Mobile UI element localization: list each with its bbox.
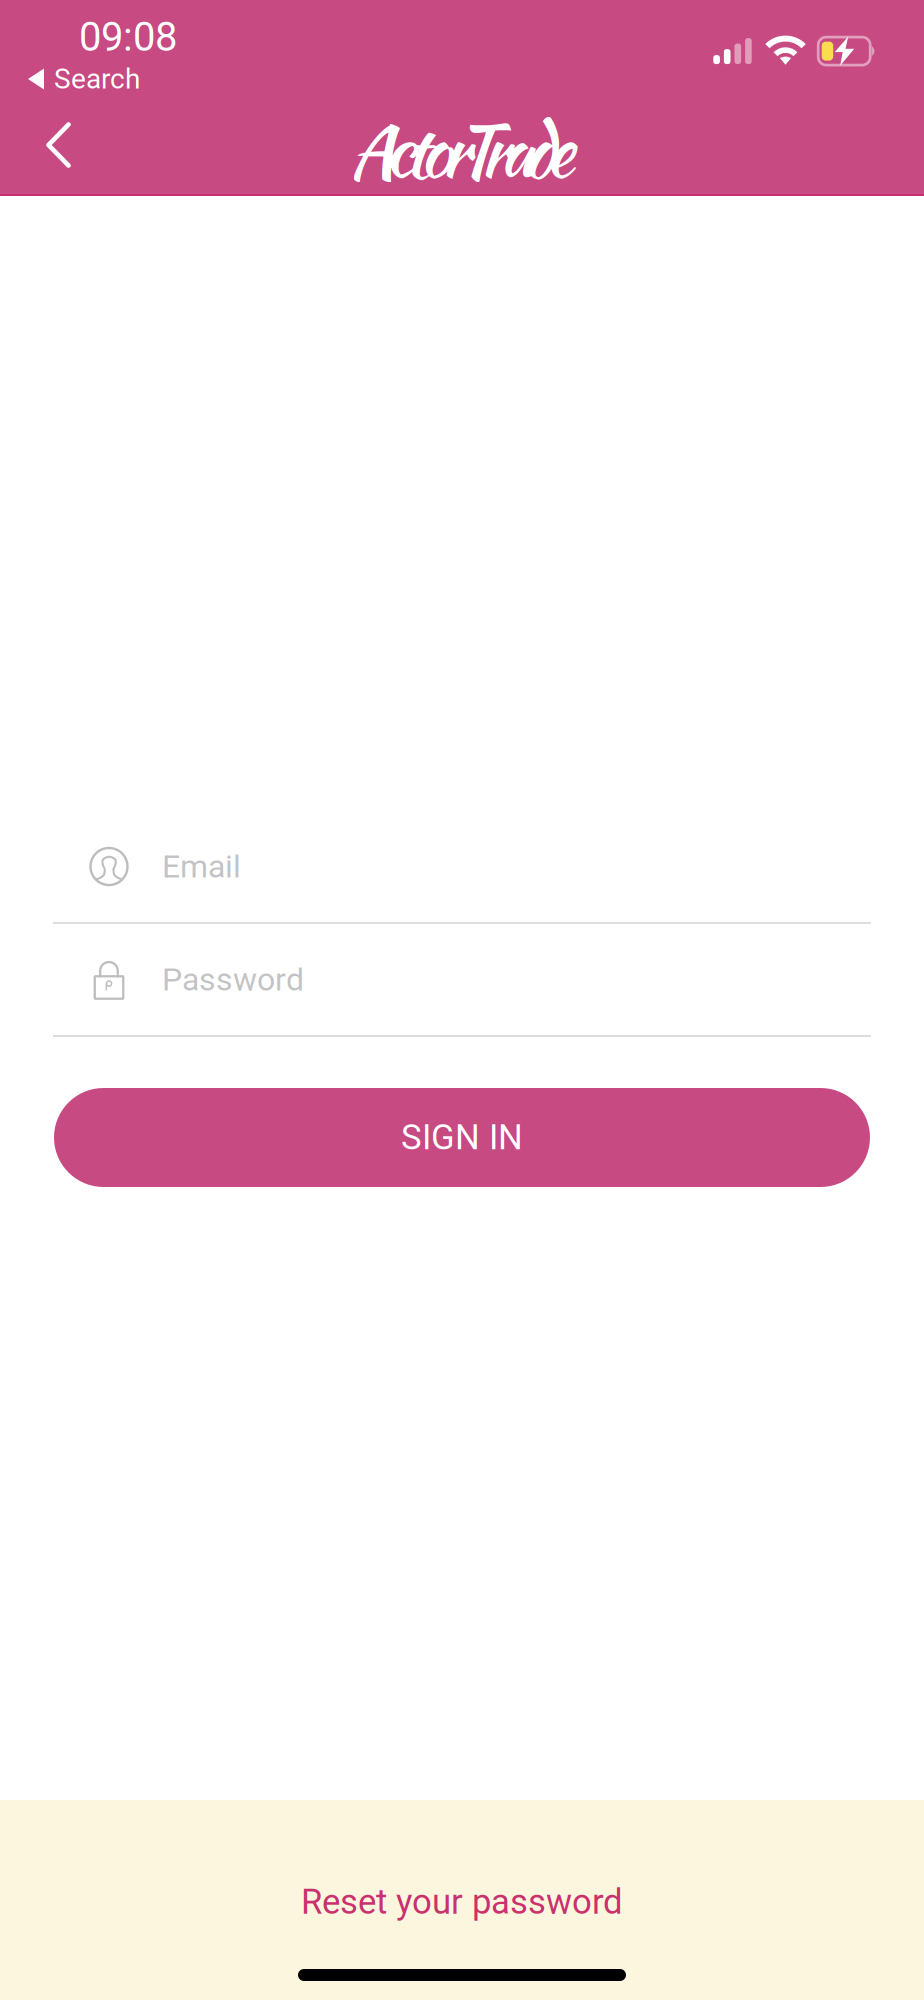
button[interactable]: SIGN IN — [54, 1088, 870, 1187]
button[interactable]: Back — [24, 102, 93, 188]
staticText: Password — [162, 961, 304, 998]
button[interactable]: Password — [0, 924, 924, 1035]
staticText: 09:08 — [79, 14, 177, 60]
staticText: Search — [54, 63, 140, 95]
staticText: SIGN IN — [401, 1117, 523, 1158]
staticText: Reset your password — [301, 1882, 623, 1922]
button[interactable]: Email — [0, 811, 924, 922]
button[interactable]: Reset your password — [0, 1882, 924, 1922]
staticText: Email — [162, 848, 241, 885]
staticText: ActorTrade — [349, 100, 574, 202]
